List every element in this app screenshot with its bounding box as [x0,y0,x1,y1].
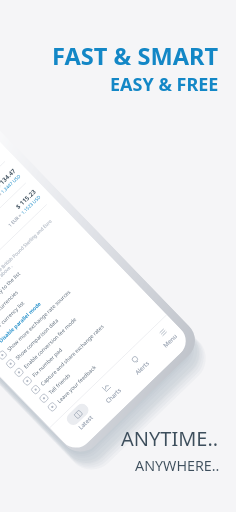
staticText: Show comparison data [14,316,59,361]
staticText: 1 EUR = [7,211,24,228]
staticText: ANYWHERE.. [135,456,220,475]
staticText: Reorder currencies [0,288,20,326]
button[interactable]: Clear currency list [0,231,95,354]
staticText: Leave your feedback [55,363,98,404]
button[interactable]: Leave your feedback [36,300,162,423]
staticText: Fix number pad [30,345,64,378]
staticText: FAST & SMART [52,40,219,72]
staticText: Clear currency list [0,299,26,335]
staticText: Capture and share exchange rates [39,322,105,387]
button[interactable]: Menu [143,317,190,364]
staticText: Alerts [134,359,151,377]
staticText: EASY & FREE [110,72,219,97]
button[interactable]: Enable conversion fee mode [3,266,129,388]
button[interactable]: Capture and share exchange rates [19,283,146,406]
staticText: 1 GBP = [0,190,4,207]
staticText: Charts [104,386,123,405]
staticText: Disable parallel mode [0,300,42,344]
button[interactable]: GBP [0,155,33,289]
button[interactable]: Show more exchange rate sources [0,249,112,371]
staticText: ANYTIME.. [121,425,219,452]
button[interactable]: Show comparison data [0,257,120,380]
staticText: Tell friends [47,371,72,396]
button[interactable]: Add a currency to the list [0,214,79,337]
staticText: Enable conversion fee mode [22,315,78,370]
button[interactable]: Disable parallel mode [0,240,104,363]
staticText: Menu [162,332,179,349]
button[interactable]: Latest [58,396,108,446]
button[interactable]: Alerts [115,341,165,391]
button[interactable]: EUR [0,176,53,310]
staticText: 1.1523 USD [20,194,42,215]
staticText: Conversions are based on the British Pou… [0,218,57,319]
staticText: 1.3447 USD [0,173,22,195]
button[interactable]: Fix number pad [11,274,137,397]
staticText: Latest [77,413,95,431]
button[interactable]: Charts [86,369,136,418]
staticText: Add a currency to the list [0,270,21,318]
button[interactable]: Tell friends [28,292,154,414]
button[interactable]: Reorder currencies [0,223,87,345]
staticText: $ 115.23 [0,187,37,233]
staticText: $ 134.47 [0,166,17,212]
staticText: Show more exchange rate sources [5,288,72,352]
